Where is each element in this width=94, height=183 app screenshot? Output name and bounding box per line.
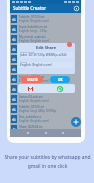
button[interactable]: OK: [50, 76, 70, 83]
staticText: English (English.com): [19, 49, 49, 53]
staticText: English (English.com): [19, 79, 49, 83]
staticText: English (eng) 1080p: [19, 59, 47, 63]
button[interactable]: Input-Subtitle-en.srt: [10, 24, 81, 34]
button[interactable]: Info: [74, 6, 79, 11]
staticText: English (English.com): [19, 119, 49, 123]
staticText: Series-03-sub.srt: [19, 95, 43, 99]
staticText: DELETE: [27, 78, 38, 82]
button[interactable]: My_movie_subs.srt: [10, 34, 81, 44]
staticText: English (English.com): [19, 19, 49, 23]
staticText: Movie Name: [20, 50, 35, 53]
staticText: English (eng) - 720p: [19, 29, 47, 33]
button[interactable]: Subtitle_00124.srt: [10, 74, 81, 84]
button[interactable]: Subtitle_00123.srt: [10, 14, 81, 24]
staticText: Edit Share: [36, 45, 57, 50]
staticText: My_movie_subs.srt: [19, 35, 46, 39]
staticText: Doc_subtitle.srt: [19, 115, 41, 119]
staticText: Subtitle Creator: [13, 5, 47, 11]
button[interactable]: Trailer-subs.srt: [10, 54, 81, 64]
staticText: English (English) 720p WEB: [19, 89, 57, 93]
staticText: OK: [58, 78, 63, 82]
button[interactable]: Movie_final_en.srt: [10, 84, 81, 94]
button[interactable]: Episode_01.srt: [10, 64, 81, 74]
staticText: English (English.com): [19, 39, 49, 43]
staticText: Subtitle_00124.srt: [19, 75, 45, 79]
button[interactable]: Doc_subtitle.srt: [10, 114, 81, 124]
staticText: Subtitle_00123.srt: [19, 15, 45, 19]
staticText: Episode_01.srt: [19, 65, 40, 69]
staticText: English (English.com): [19, 129, 49, 133]
staticText: Subtitle_file_2.srt: [19, 45, 43, 49]
staticText: Movie_final_en.srt: [19, 85, 45, 89]
staticText: Subtitle_00125.srt: [19, 105, 45, 109]
button[interactable]: Close: [67, 42, 72, 47]
button[interactable]: WhatsApp: [56, 84, 64, 93]
staticText: English (English.com): [20, 63, 52, 67]
staticText: Show_S02E04.srt: [19, 125, 43, 129]
staticText: English (eng) 480p DVDRip: [19, 109, 57, 113]
staticText: Input-Subtitle-en.srt: [19, 25, 48, 29]
button[interactable]: Subtitle_file_2.srt: [10, 44, 81, 54]
staticText: English (English.com): [19, 99, 49, 103]
staticText: Joker 2018 (720p WEBRip-x264): [20, 53, 67, 57]
staticText: Trailer-subs.srt: [19, 55, 40, 59]
button[interactable]: DELETE: [21, 76, 43, 83]
staticText: Share your subtitles by whatsapp and gma…: [4, 154, 91, 169]
button[interactable]: Show_S02E04.srt: [10, 124, 81, 134]
button[interactable]: Series-03-sub.srt: [10, 94, 81, 104]
staticText: Name: [20, 60, 27, 63]
button[interactable]: Gmail: [26, 84, 34, 93]
button[interactable]: Subtitle_00125.srt: [10, 104, 81, 114]
button[interactable]: Add: [71, 117, 81, 127]
